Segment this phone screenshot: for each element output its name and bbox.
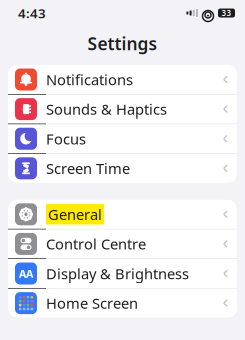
staticText: 33: [221, 8, 231, 18]
button[interactable]: Sounds & Haptics: [8, 95, 237, 124]
button[interactable]: Screen Time: [8, 154, 237, 183]
staticText: General: [48, 205, 102, 224]
staticText: Focus: [46, 129, 86, 148]
button[interactable]: Home Screen: [8, 289, 237, 318]
button[interactable]: AA: [8, 259, 237, 289]
staticText: Control Centre: [46, 234, 146, 254]
staticText: Home Screen: [46, 293, 138, 313]
button[interactable]: Control Centre: [8, 229, 237, 259]
button[interactable]: Focus: [8, 124, 237, 154]
staticText: Notifications: [46, 70, 133, 89]
staticText: 4:43: [18, 4, 46, 22]
staticText: AA: [19, 266, 33, 281]
staticText: Settings: [87, 32, 157, 55]
button[interactable]: Notifications: [8, 65, 237, 95]
staticText: Sounds & Haptics: [46, 99, 167, 119]
staticText: Screen Time: [46, 159, 130, 178]
button[interactable]: General: [8, 200, 237, 229]
staticText: Display & Brightness: [46, 264, 189, 283]
